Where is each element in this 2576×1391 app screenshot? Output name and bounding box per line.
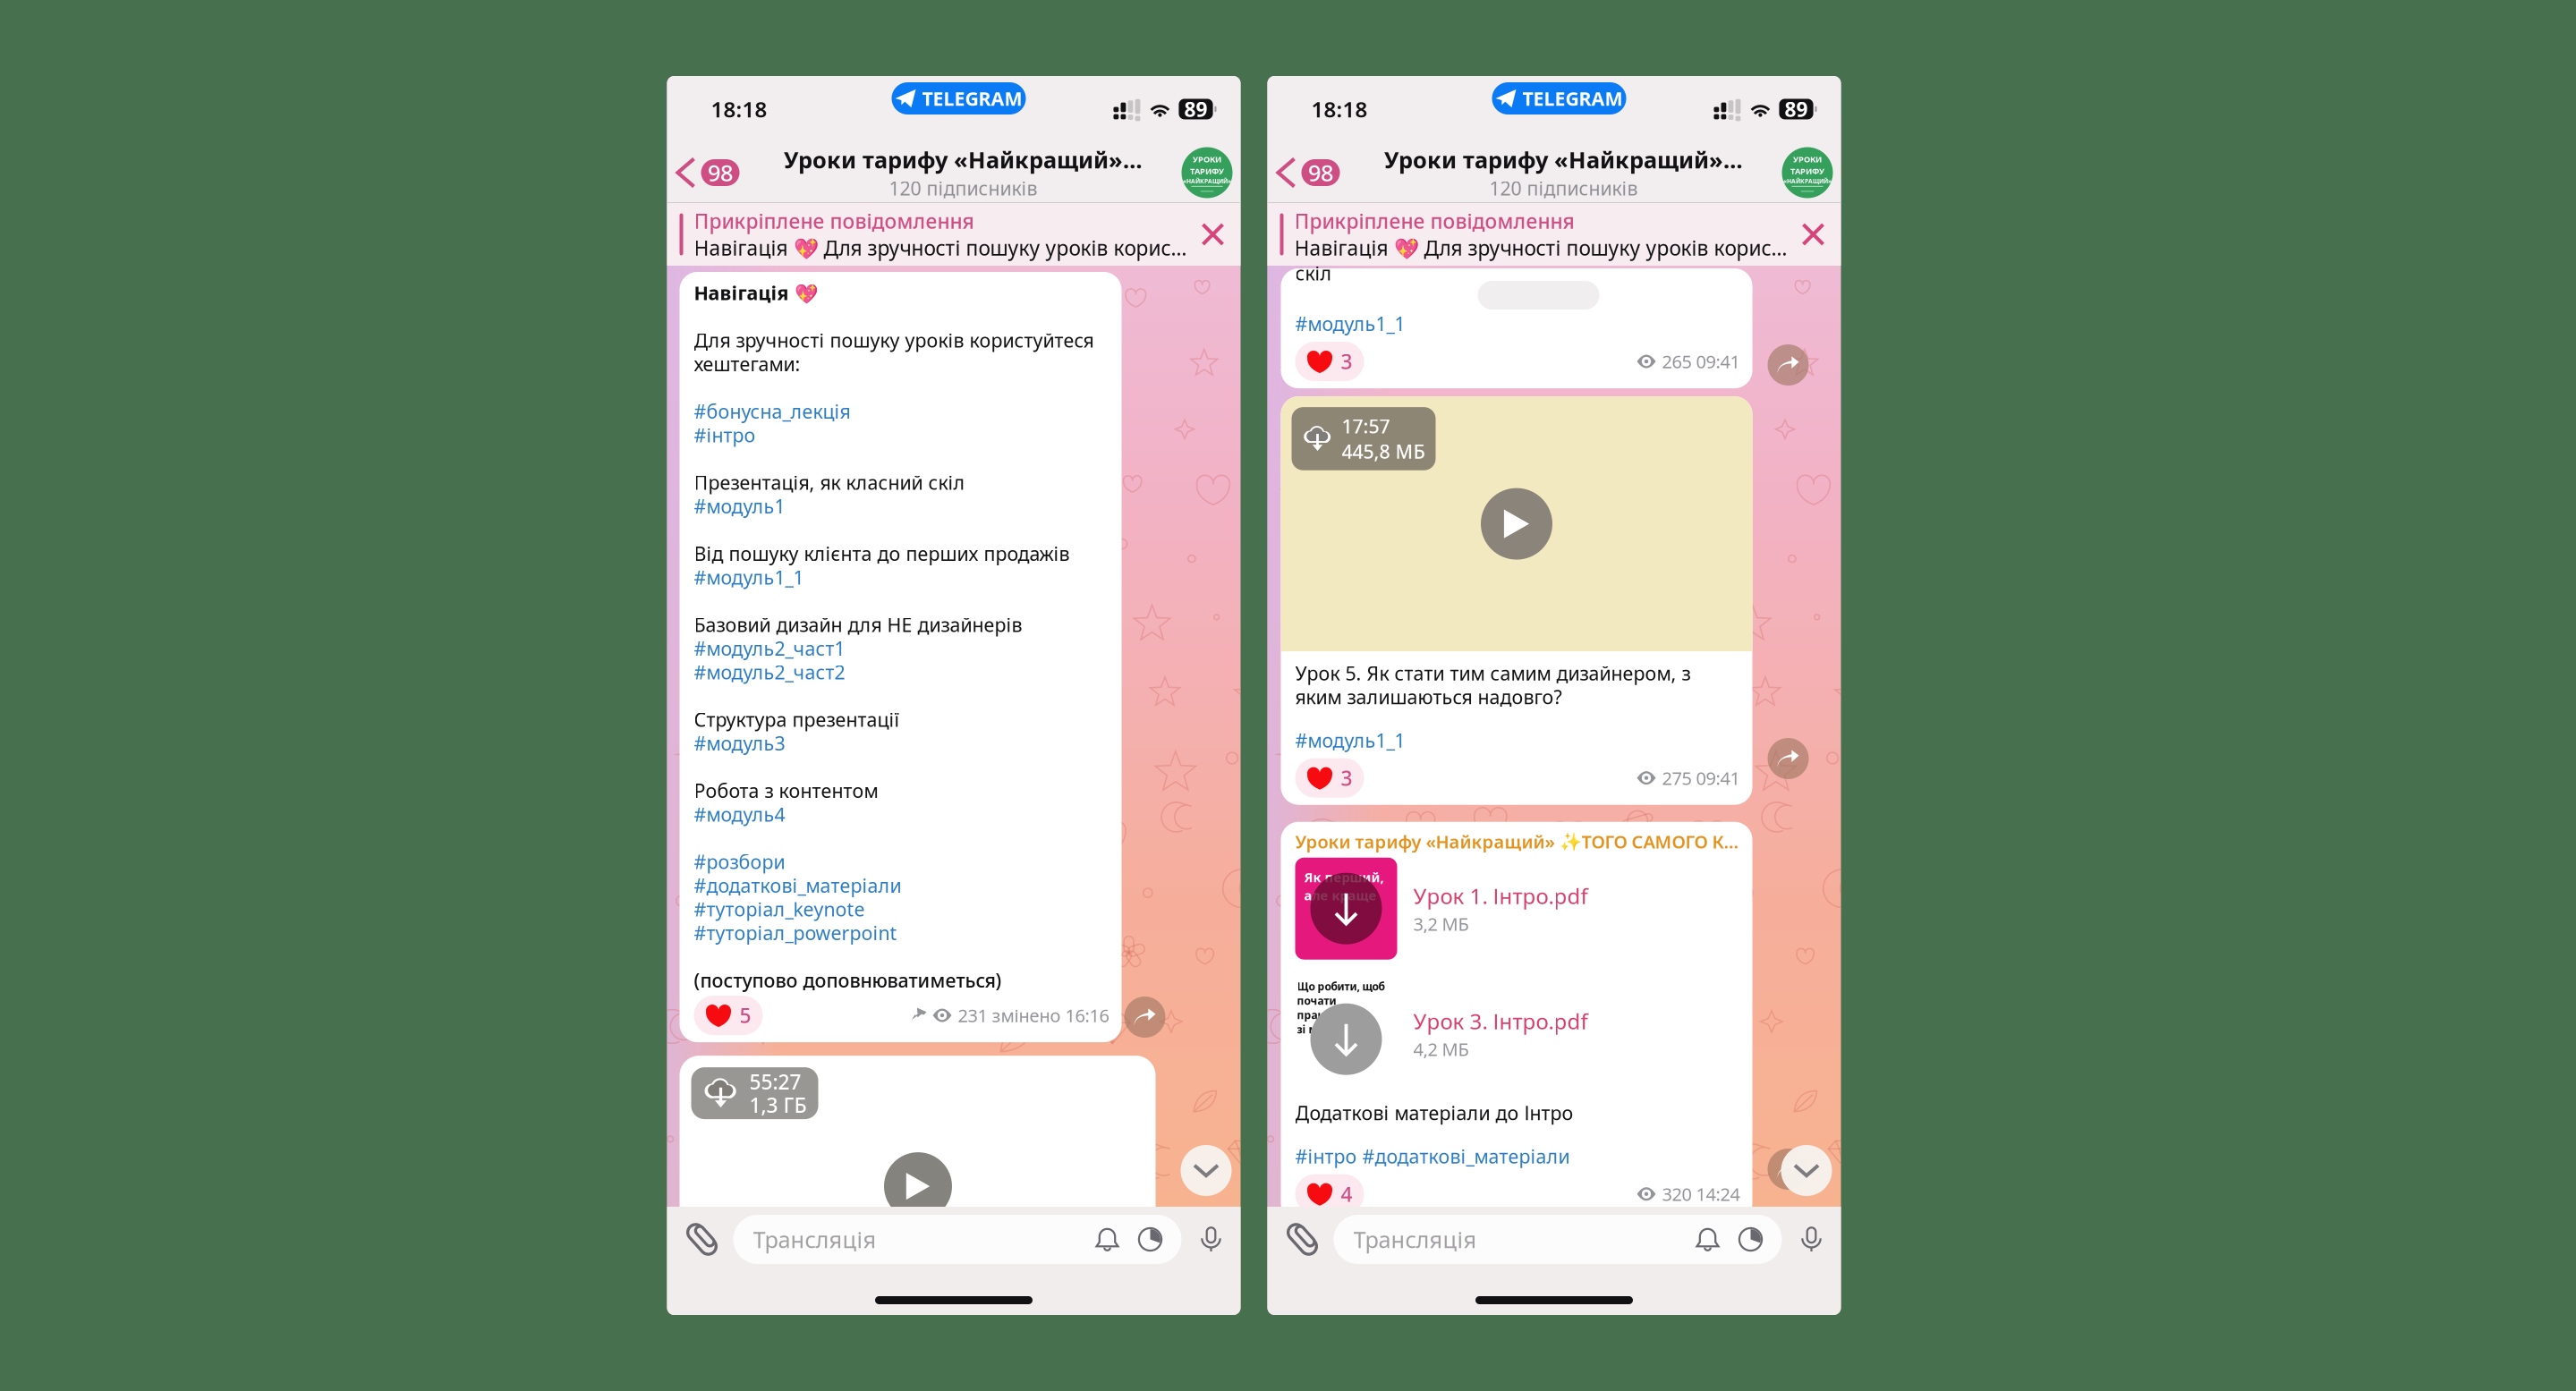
- staticText: 4: [1341, 1181, 1352, 1207]
- staticText: 231 змінено 16:16: [958, 1003, 1109, 1027]
- staticText: 4,2 МБ: [1413, 1037, 1469, 1061]
- staticText: 120 підписників: [1489, 176, 1638, 201]
- staticText: Додаткові матеріали до Інтро: [1295, 1100, 1573, 1125]
- staticText: #туторіал_keynote: [694, 896, 865, 922]
- staticText: ТАРИФУ: [1190, 165, 1224, 176]
- staticText: Уроки тарифу «Найкращий»…: [1384, 144, 1743, 175]
- staticText: Базовий дизайн для НЕ дизайнерів: [694, 612, 1022, 637]
- button[interactable]: Attach: [1267, 1221, 1321, 1258]
- button[interactable]: Як перший,: [1295, 858, 1740, 960]
- button[interactable]: Notifications: [1694, 1226, 1721, 1253]
- staticText: 275 09:41: [1662, 766, 1740, 790]
- button[interactable]: Play video: [884, 1152, 952, 1220]
- staticText: #модуль1: [694, 493, 785, 519]
- button[interactable]: Forward: [1768, 1149, 1809, 1190]
- button[interactable]: Що робити, щоб: [1295, 983, 1740, 1085]
- button[interactable]: Record voice: [1782, 1226, 1841, 1253]
- staticText: 3: [1341, 348, 1352, 375]
- staticText: 320 14:24: [1662, 1182, 1740, 1206]
- staticText: #інтро: [694, 422, 756, 448]
- button[interactable]: Record voice: [1182, 1226, 1241, 1253]
- staticText: УРОКИ: [1193, 154, 1221, 165]
- staticText: 445,8 МБ: [1342, 439, 1425, 464]
- staticText: ТАРИФУ: [1790, 165, 1824, 176]
- staticText: 18:18: [1311, 95, 1368, 123]
- staticText: #модуль1_1: [694, 565, 804, 590]
- button[interactable]: 5: [694, 996, 763, 1035]
- staticText: УРОКИ: [1793, 154, 1822, 165]
- staticText: 1,3 ГБ: [749, 1091, 807, 1118]
- staticText: Навігація 💖 Для зручності пошуку уроків …: [694, 234, 1187, 261]
- staticText: #інтро #додаткові_матеріали: [1295, 1143, 1570, 1169]
- button[interactable]: 3: [1295, 758, 1364, 798]
- staticText: #модуль1_1: [1295, 727, 1405, 753]
- staticText: Від пошуку клієнта до перших продажів: [694, 541, 1070, 566]
- staticText: Навігація 💖: [694, 280, 818, 305]
- staticText: 18:18: [711, 95, 767, 123]
- button[interactable]: Трансляція: [1353, 1215, 1694, 1264]
- button[interactable]: Трансляція: [753, 1215, 1094, 1264]
- button[interactable]: Channel profile: [1182, 147, 1241, 198]
- staticText: 17:57: [1342, 413, 1390, 439]
- staticText: Уроки тарифу «Найкращий» ✨ТОГО САМОГО КУ…: [1295, 830, 1740, 853]
- staticText: Робота з контентом: [694, 778, 878, 803]
- staticText: 3: [1341, 764, 1352, 791]
- staticText: яким залишаються надовго?: [1295, 684, 1562, 709]
- staticText: 98: [1308, 158, 1333, 188]
- staticText: (поступово доповнюватиметься): [694, 968, 1002, 993]
- button[interactable]: Close pinned message: [1190, 214, 1235, 255]
- staticText: 55:27: [749, 1068, 801, 1095]
- button[interactable]: Close pinned message: [1791, 214, 1836, 255]
- staticText: «НАЙКРАЩИЙ»: [1783, 177, 1832, 185]
- staticText: TELEGRAM: [1522, 86, 1623, 111]
- staticText: Урок 1. Інтро.pdf: [1413, 882, 1588, 910]
- staticText: Прикріплене повідомлення: [1294, 207, 1574, 234]
- button[interactable]: Forward: [1124, 997, 1165, 1038]
- staticText: Урок 5. Як стати тим самим дизайнером, з: [1295, 660, 1691, 686]
- staticText: 98: [708, 158, 733, 188]
- staticText: Трансляція: [1353, 1224, 1477, 1254]
- button[interactable]: Schedule: [1137, 1226, 1164, 1253]
- staticText: Що робити, щоб: [1297, 979, 1385, 993]
- button[interactable]: Forward: [1768, 738, 1809, 779]
- staticText: #додаткові_матеріали: [694, 873, 901, 898]
- staticText: Структура презентації: [694, 707, 900, 732]
- button[interactable]: Channel profile: [1782, 147, 1841, 198]
- button[interactable]: 98: [667, 144, 745, 201]
- staticText: 120 підписників: [889, 176, 1037, 201]
- staticText: 5: [740, 1002, 751, 1029]
- staticText: зі мною?: [1297, 1022, 1345, 1036]
- button[interactable]: 3: [1295, 342, 1364, 381]
- button[interactable]: Schedule: [1737, 1226, 1764, 1253]
- staticText: почати працювати: [1297, 993, 1359, 1022]
- staticText: #розбори: [694, 849, 785, 874]
- staticText: #модуль2_част2: [694, 659, 845, 685]
- button[interactable]: Scroll to bottom: [1181, 1145, 1232, 1196]
- button[interactable]: Forward: [1768, 344, 1809, 386]
- staticText: Уроки тарифу «Найкращий»…: [784, 144, 1143, 175]
- staticText: #модуль2_част1: [694, 636, 845, 661]
- staticText: хештегами:: [694, 351, 800, 377]
- button[interactable]: 98: [1267, 144, 1345, 201]
- staticText: #бонусна_лекція: [694, 399, 850, 424]
- staticText: 89: [1184, 96, 1207, 123]
- staticText: Навігація 💖 Для зручності пошуку уроків …: [1294, 234, 1787, 261]
- staticText: Прикріплене повідомлення: [694, 207, 974, 234]
- staticText: 3,2 МБ: [1413, 912, 1469, 936]
- staticText: #модуль1_1: [1295, 311, 1405, 336]
- staticText: #модуль3: [694, 730, 785, 756]
- staticText: скіл: [1295, 260, 1332, 286]
- button[interactable]: Attach: [667, 1221, 721, 1258]
- staticText: «НАЙКРАЩИЙ»: [1183, 177, 1231, 185]
- staticText: Як перший,: [1304, 868, 1384, 886]
- button[interactable]: 4: [1295, 1174, 1364, 1214]
- button[interactable]: Notifications: [1094, 1226, 1121, 1253]
- staticText: Урок 3. Інтро.pdf: [1413, 1007, 1588, 1035]
- button[interactable]: Scroll to bottom: [1781, 1145, 1832, 1196]
- staticText: але краще: [1304, 887, 1377, 904]
- staticText: 89: [1785, 96, 1808, 123]
- staticText: Презентація, як класний скіл: [694, 470, 965, 495]
- staticText: #модуль4: [694, 802, 785, 827]
- staticText: Для зручності пошуку уроків користуйтеся: [694, 327, 1094, 353]
- staticText: Трансляція: [753, 1224, 876, 1254]
